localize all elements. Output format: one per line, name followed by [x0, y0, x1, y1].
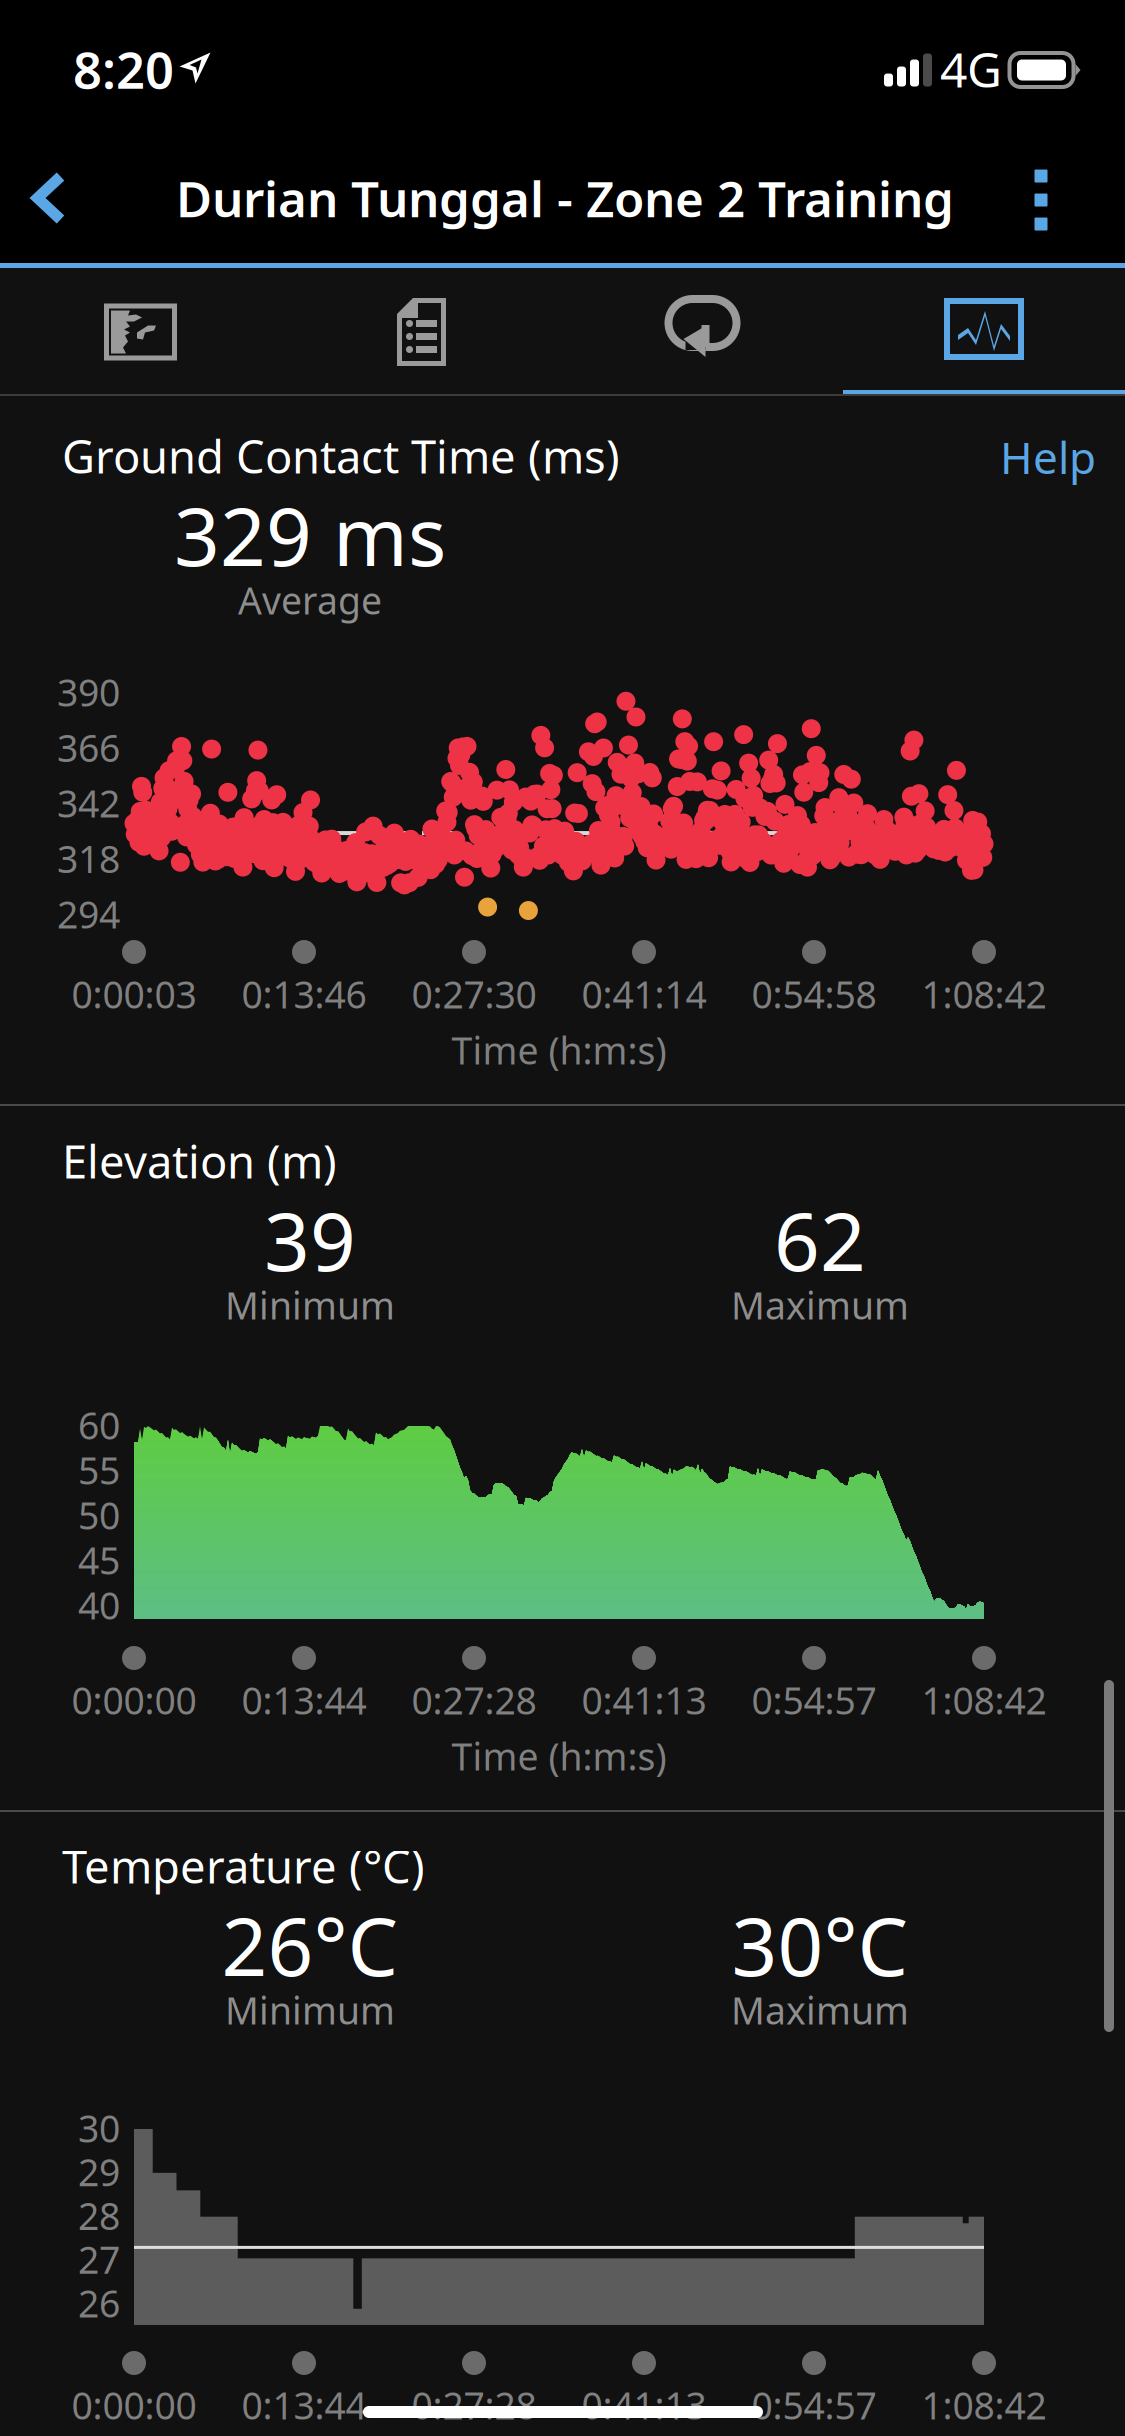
staticText: 366: [57, 723, 120, 772]
staticText: Average: [238, 575, 382, 625]
staticText: 0:27:28: [411, 1675, 536, 1725]
staticText: 0:54:58: [751, 969, 876, 1019]
staticText: Time (h:m:s): [451, 1025, 666, 1075]
staticText: 0:13:44: [241, 2380, 366, 2430]
staticText: 29: [78, 2147, 120, 2197]
button[interactable]: Charts: [843, 268, 1125, 396]
staticText: 40: [78, 1580, 120, 1630]
staticText: 4G: [940, 37, 1002, 101]
staticText: 1:08:42: [921, 1675, 1046, 1725]
staticText: Help: [1000, 428, 1096, 486]
button[interactable]: More options: [1000, 160, 1082, 240]
staticText: 0:13:44: [241, 1675, 366, 1725]
staticText: 1:08:42: [921, 2380, 1046, 2430]
staticText: 26: [78, 2278, 120, 2328]
staticText: 0:27:28: [411, 2380, 536, 2430]
staticText: Durian Tunggal - Zone 2 Training: [176, 165, 954, 231]
staticText: 0:41:14: [581, 969, 706, 1019]
staticText: 342: [57, 778, 120, 828]
staticText: 0:54:57: [751, 2380, 876, 2430]
staticText: 0:00:03: [71, 969, 196, 1019]
staticText: Time (h:m:s): [451, 1731, 666, 1781]
staticText: 329 ms: [174, 482, 446, 588]
staticText: 55: [78, 1445, 120, 1495]
button[interactable]: Back: [10, 170, 88, 226]
staticText: 0:00:00: [71, 2380, 196, 2430]
staticText: 30: [78, 2103, 120, 2153]
staticText: Temperature (°C): [62, 1836, 425, 1896]
staticText: 390: [57, 667, 120, 717]
staticText: Maximum: [731, 1280, 909, 1330]
staticText: 27: [78, 2234, 120, 2284]
staticText: Elevation (m): [62, 1131, 337, 1191]
staticText: 26°C: [221, 1892, 398, 1998]
staticText: 30°C: [731, 1892, 908, 1998]
staticText: 45: [78, 1535, 120, 1585]
staticText: 62: [774, 1187, 866, 1293]
staticText: 28: [78, 2191, 120, 2240]
staticText: 1:08:42: [921, 969, 1046, 1019]
staticText: 0:54:57: [751, 1675, 876, 1725]
button[interactable]: Details: [281, 268, 562, 396]
staticText: Ground Contact Time (ms): [62, 426, 620, 486]
button[interactable]: Help: [1000, 432, 1096, 482]
staticText: 0:00:00: [71, 1675, 196, 1725]
button[interactable]: Laps: [562, 268, 843, 396]
staticText: 0:41:13: [581, 2380, 706, 2430]
staticText: 318: [57, 834, 120, 883]
staticText: 0:13:46: [241, 969, 366, 1019]
staticText: Minimum: [225, 1985, 395, 2035]
staticText: 0:41:13: [581, 1675, 706, 1725]
button[interactable]: Map: [0, 268, 281, 396]
staticText: Minimum: [225, 1280, 395, 1330]
staticText: 60: [78, 1400, 120, 1450]
staticText: 50: [78, 1490, 120, 1540]
staticText: 294: [57, 889, 120, 939]
staticText: 8:20: [73, 35, 174, 103]
staticText: 0:27:30: [411, 969, 536, 1019]
staticText: 39: [264, 1187, 356, 1293]
staticText: Maximum: [731, 1985, 909, 2035]
